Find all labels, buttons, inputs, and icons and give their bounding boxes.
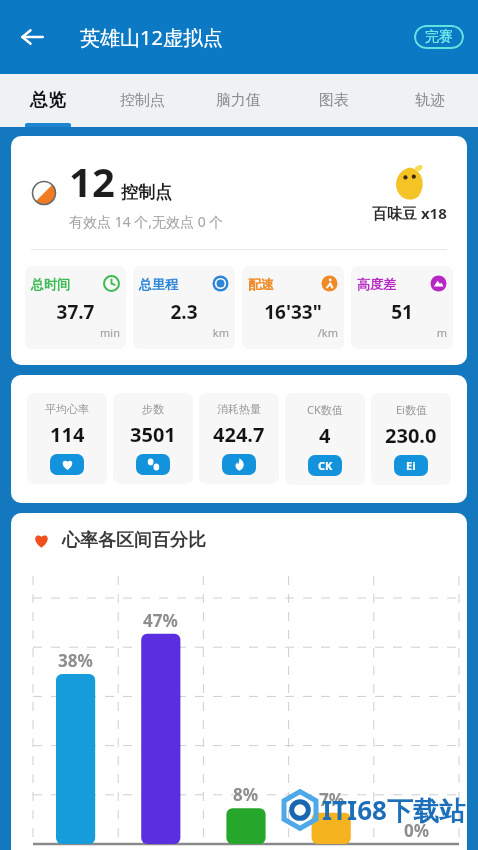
- button[interactable]: 控制点: [95, 74, 190, 127]
- button[interactable]: 消耗热量: [199, 393, 279, 484]
- button[interactable]: 高度差: [351, 266, 453, 349]
- staticText: 16'33": [248, 299, 338, 325]
- button[interactable]: 步数: [113, 393, 193, 484]
- staticText: 总览: [30, 89, 66, 112]
- staticText: 0%: [404, 819, 430, 842]
- staticText: 百味豆 x18: [372, 203, 447, 223]
- staticText: 7%: [319, 788, 345, 811]
- button[interactable]: 平均心率: [27, 393, 107, 484]
- staticText: 3501: [130, 421, 176, 448]
- staticText: 总里程: [139, 276, 178, 292]
- staticText: m: [357, 325, 447, 340]
- button[interactable]: Back: [8, 13, 56, 61]
- staticText: CK数值: [307, 402, 343, 417]
- button[interactable]: CK数值: [285, 393, 365, 485]
- staticText: 图表: [319, 91, 349, 110]
- staticText: 37.7: [31, 299, 120, 325]
- staticText: 步数: [142, 402, 164, 416]
- staticText: 完赛: [425, 28, 453, 46]
- button[interactable]: 总览: [0, 74, 95, 127]
- staticText: min: [31, 325, 120, 340]
- staticText: 8%: [233, 783, 259, 806]
- staticText: Ei数值: [396, 402, 427, 417]
- button[interactable]: 轨迹: [382, 74, 478, 127]
- staticText: 47%: [143, 609, 178, 632]
- button[interactable]: 配速: [242, 266, 344, 349]
- staticText: 12: [69, 154, 115, 208]
- staticText: 消耗热量: [217, 402, 261, 416]
- staticText: km: [139, 325, 229, 340]
- button[interactable]: 总时间: [25, 266, 126, 349]
- staticText: 38%: [58, 649, 93, 672]
- staticText: 控制点: [120, 91, 165, 110]
- staticText: 控制点: [121, 182, 172, 203]
- staticText: 51: [357, 299, 447, 325]
- staticText: 总时间: [31, 276, 70, 292]
- staticText: CK: [318, 458, 333, 473]
- staticText: 心率各区间百分比: [62, 529, 206, 552]
- staticText: 平均心率: [45, 402, 89, 416]
- button[interactable]: 脑力值: [190, 74, 286, 127]
- staticText: 2.3: [139, 299, 229, 325]
- staticText: ITI68下载站: [322, 792, 465, 828]
- staticText: 114: [50, 421, 85, 448]
- staticText: /km: [248, 325, 338, 340]
- staticText: 脑力值: [216, 91, 261, 110]
- staticText: 英雄山12虚拟点: [80, 24, 223, 51]
- button[interactable]: Ei数值: [371, 393, 451, 485]
- staticText: 230.0: [385, 422, 437, 449]
- button[interactable]: 图表: [286, 74, 382, 127]
- staticText: 4: [319, 422, 331, 449]
- staticText: 高度差: [357, 276, 396, 292]
- staticText: 424.7: [213, 421, 265, 448]
- staticText: 配速: [248, 276, 274, 292]
- staticText: Ei: [406, 458, 416, 473]
- staticText: 有效点 14 个,无效点 0 个: [69, 212, 224, 231]
- button[interactable]: 总里程: [133, 266, 235, 349]
- staticText: 轨迹: [415, 91, 445, 110]
- button[interactable]: 完赛: [414, 25, 464, 49]
